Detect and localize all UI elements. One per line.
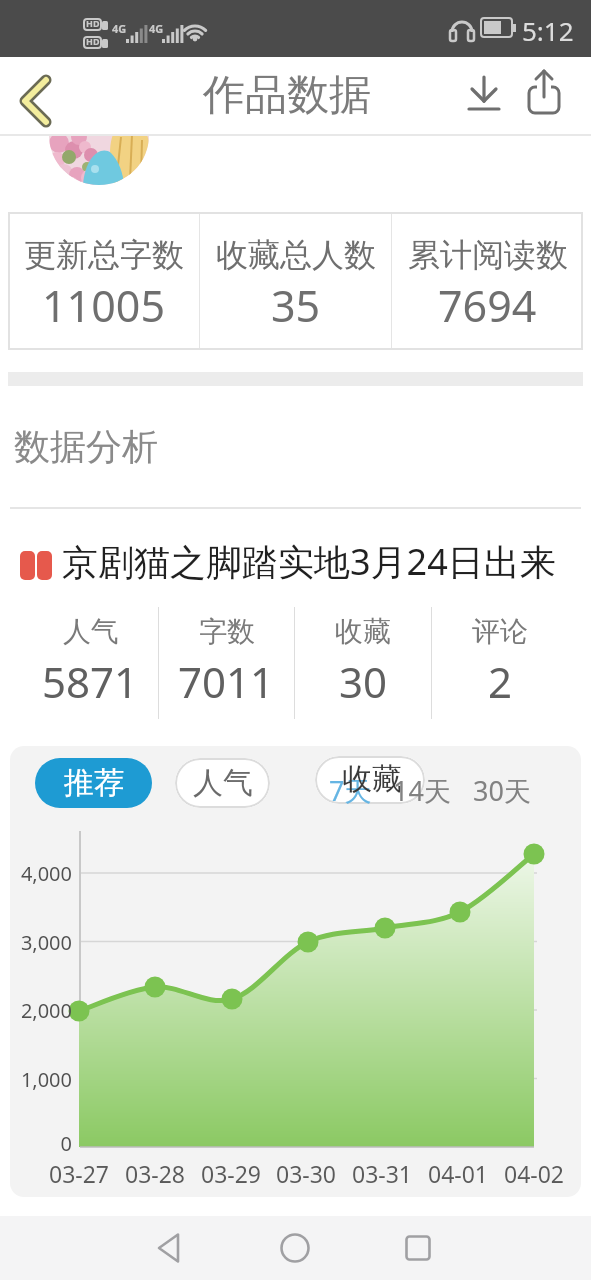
button[interactable]: [386, 1216, 450, 1280]
staticText: 4G: [149, 21, 164, 36]
staticText: 5:12: [522, 13, 574, 48]
button[interactable]: 评论: [432, 607, 568, 719]
button[interactable]: [139, 1216, 203, 1280]
staticText: HD: [86, 17, 100, 29]
staticText: 字数: [199, 614, 255, 649]
staticText: 0: [10, 1130, 72, 1157]
staticText: 03-28: [117, 1158, 193, 1189]
button[interactable]: [466, 75, 502, 111]
staticText: 人气: [193, 764, 253, 802]
button[interactable]: [315, 756, 425, 804]
staticText: 11005: [42, 276, 165, 335]
button[interactable]: 收藏总人数: [200, 212, 391, 350]
staticText: 收藏总人数: [216, 235, 376, 275]
button[interactable]: 京剧猫之脚踏实地3月24日出来: [20, 537, 591, 586]
button[interactable]: 人气: [175, 758, 270, 808]
staticText: 03-27: [41, 1158, 117, 1189]
staticText: 7694: [438, 276, 537, 335]
staticText: 4,000: [10, 860, 72, 887]
button[interactable]: [263, 1216, 327, 1280]
staticText: 更新总字数: [24, 235, 184, 275]
staticText: 2: [488, 653, 513, 710]
staticText: HD: [86, 35, 100, 47]
staticText: 03-29: [193, 1158, 269, 1189]
button[interactable]: 收藏: [295, 607, 431, 719]
staticText: 收藏: [342, 760, 402, 798]
staticText: 累计阅读数: [408, 235, 568, 275]
button[interactable]: 累计阅读数: [392, 212, 583, 350]
staticText: 30: [339, 653, 388, 710]
staticText: 3,000: [10, 929, 72, 956]
staticText: 7011: [178, 653, 275, 710]
button[interactable]: 30天: [473, 772, 531, 809]
staticText: 京剧猫之脚踏实地3月24日出来: [62, 537, 556, 586]
staticText: 2,000: [10, 997, 72, 1024]
staticText: 数据分析: [14, 424, 158, 469]
staticText: 推荐: [64, 764, 124, 802]
staticText: 收藏: [335, 614, 391, 649]
button[interactable]: [8, 65, 66, 123]
staticText: 作品数据: [203, 69, 371, 122]
button[interactable]: 14天: [393, 772, 451, 809]
staticText: 03-30: [268, 1158, 344, 1189]
staticText: 4G: [112, 21, 127, 36]
staticText: 04-01: [420, 1158, 496, 1189]
staticText: 04-02: [496, 1158, 572, 1189]
staticText: 03-31: [344, 1158, 420, 1189]
staticText: 35: [271, 276, 321, 335]
staticText: 评论: [472, 614, 528, 649]
button[interactable]: 人气: [23, 607, 158, 719]
staticText: 1,000: [10, 1066, 72, 1093]
button[interactable]: 推荐: [35, 758, 152, 808]
button[interactable]: 更新总字数: [8, 212, 199, 350]
staticText: 5871: [42, 653, 139, 710]
button[interactable]: 字数: [159, 607, 294, 719]
button[interactable]: [525, 69, 565, 109]
staticText: 人气: [63, 614, 119, 649]
button[interactable]: 7天: [329, 772, 372, 809]
